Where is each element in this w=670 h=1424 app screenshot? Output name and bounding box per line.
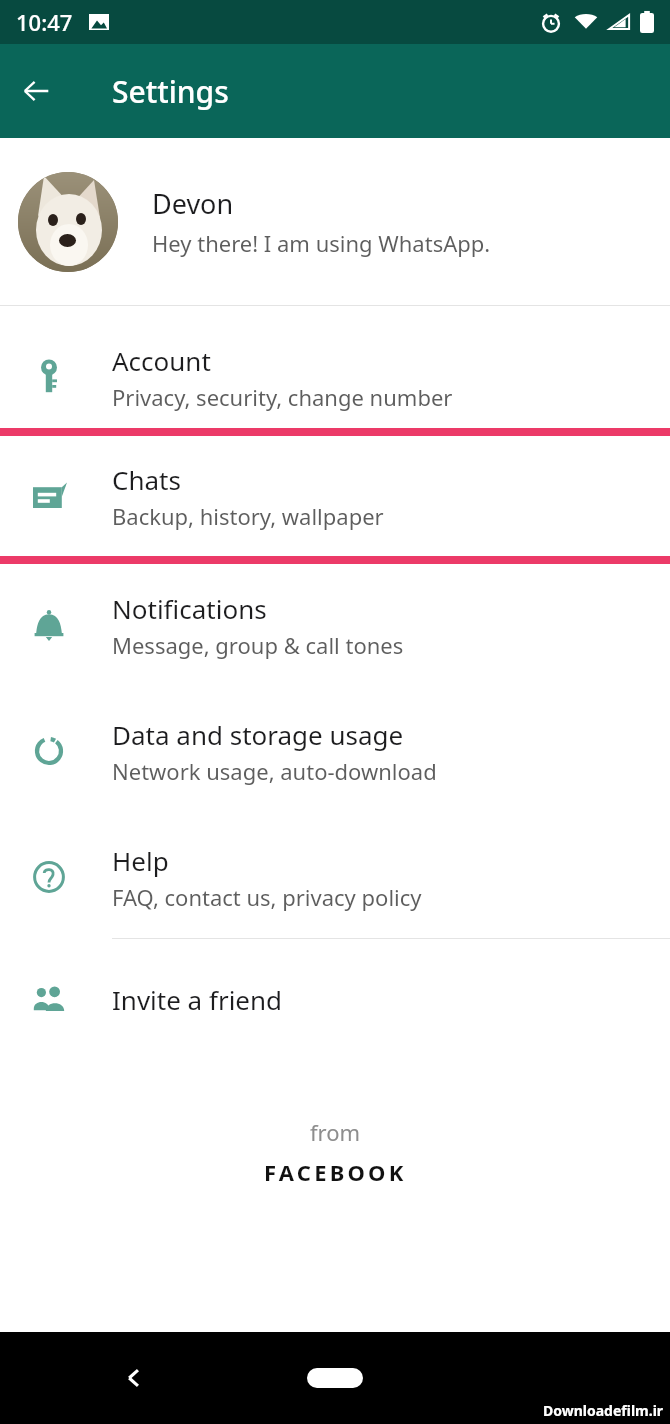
button[interactable]: Devon <box>0 138 670 305</box>
button[interactable]: Back <box>108 1352 160 1404</box>
button[interactable]: Home <box>307 1368 363 1388</box>
staticText: FAQ, contact us, privacy policy <box>112 882 422 912</box>
staticText: Hey there! I am using WhatsApp. <box>152 228 491 258</box>
staticText: Network usage, auto-download <box>112 756 437 786</box>
staticText: Data and storage usage <box>112 717 404 752</box>
staticText: Devon <box>152 185 234 222</box>
staticText: from <box>310 1117 361 1147</box>
button[interactable]: Help <box>0 816 670 938</box>
staticText: Backup, history, wallpaper <box>112 501 384 531</box>
staticText: Privacy, security, change number <box>112 382 453 412</box>
staticText: 10:47 <box>16 7 73 37</box>
staticText: Notifications <box>112 591 267 626</box>
staticText: Chats <box>112 462 181 497</box>
button[interactable]: Back <box>8 63 64 119</box>
staticText: Help <box>112 843 169 878</box>
staticText: FACEBOOK <box>264 1157 407 1187</box>
button[interactable]: Account <box>0 326 670 428</box>
button[interactable]: Invite a friend <box>0 939 670 1059</box>
staticText: Account <box>112 343 211 378</box>
staticText: Settings <box>112 71 229 112</box>
button[interactable]: Chats <box>0 436 670 556</box>
staticText: Downloadefilm.ir <box>543 1401 664 1420</box>
button[interactable]: Notifications <box>0 564 670 686</box>
staticText: Invite a friend <box>112 982 283 1017</box>
staticText: Message, group & call tones <box>112 630 404 660</box>
button[interactable]: Data and storage usage <box>0 686 670 816</box>
